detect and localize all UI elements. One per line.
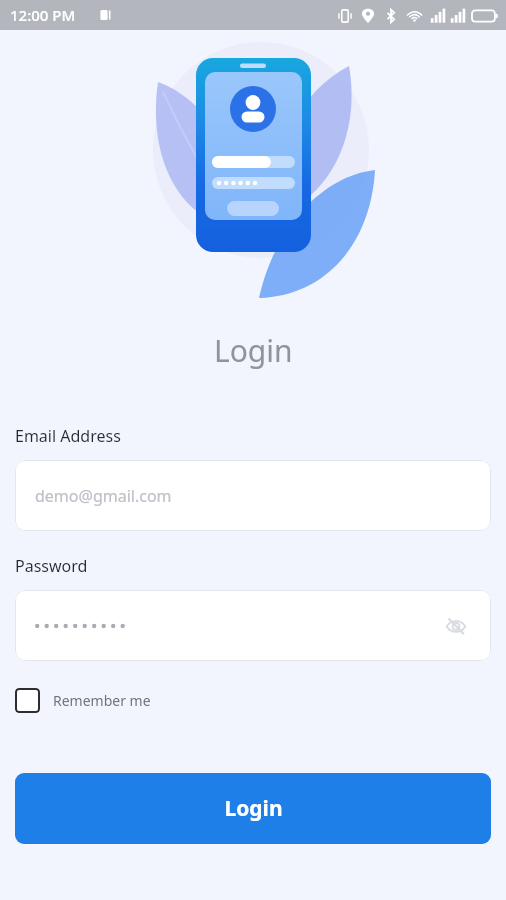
button[interactable]: Toggle password visibility: [441, 611, 471, 641]
staticText: Remember me: [53, 691, 151, 710]
staticText: 12:00 PM: [10, 5, 76, 25]
button[interactable]: Login: [15, 773, 491, 844]
button[interactable]: Remember me: [15, 684, 151, 717]
button[interactable]: demo@gmail.com: [15, 460, 491, 531]
staticText: Email Address: [15, 425, 121, 447]
staticText: demo@gmail.com: [35, 485, 172, 507]
staticText: Login: [214, 330, 293, 371]
staticText: Password: [15, 555, 88, 577]
staticText: Login: [224, 794, 283, 823]
button[interactable]: Toggle password visibility: [15, 590, 491, 661]
